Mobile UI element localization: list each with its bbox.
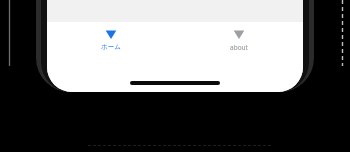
button[interactable]: Home: [47, 22, 175, 51]
staticText: ホーム: [101, 43, 121, 51]
staticText: about: [230, 43, 248, 52]
button[interactable]: About: [175, 22, 303, 52]
